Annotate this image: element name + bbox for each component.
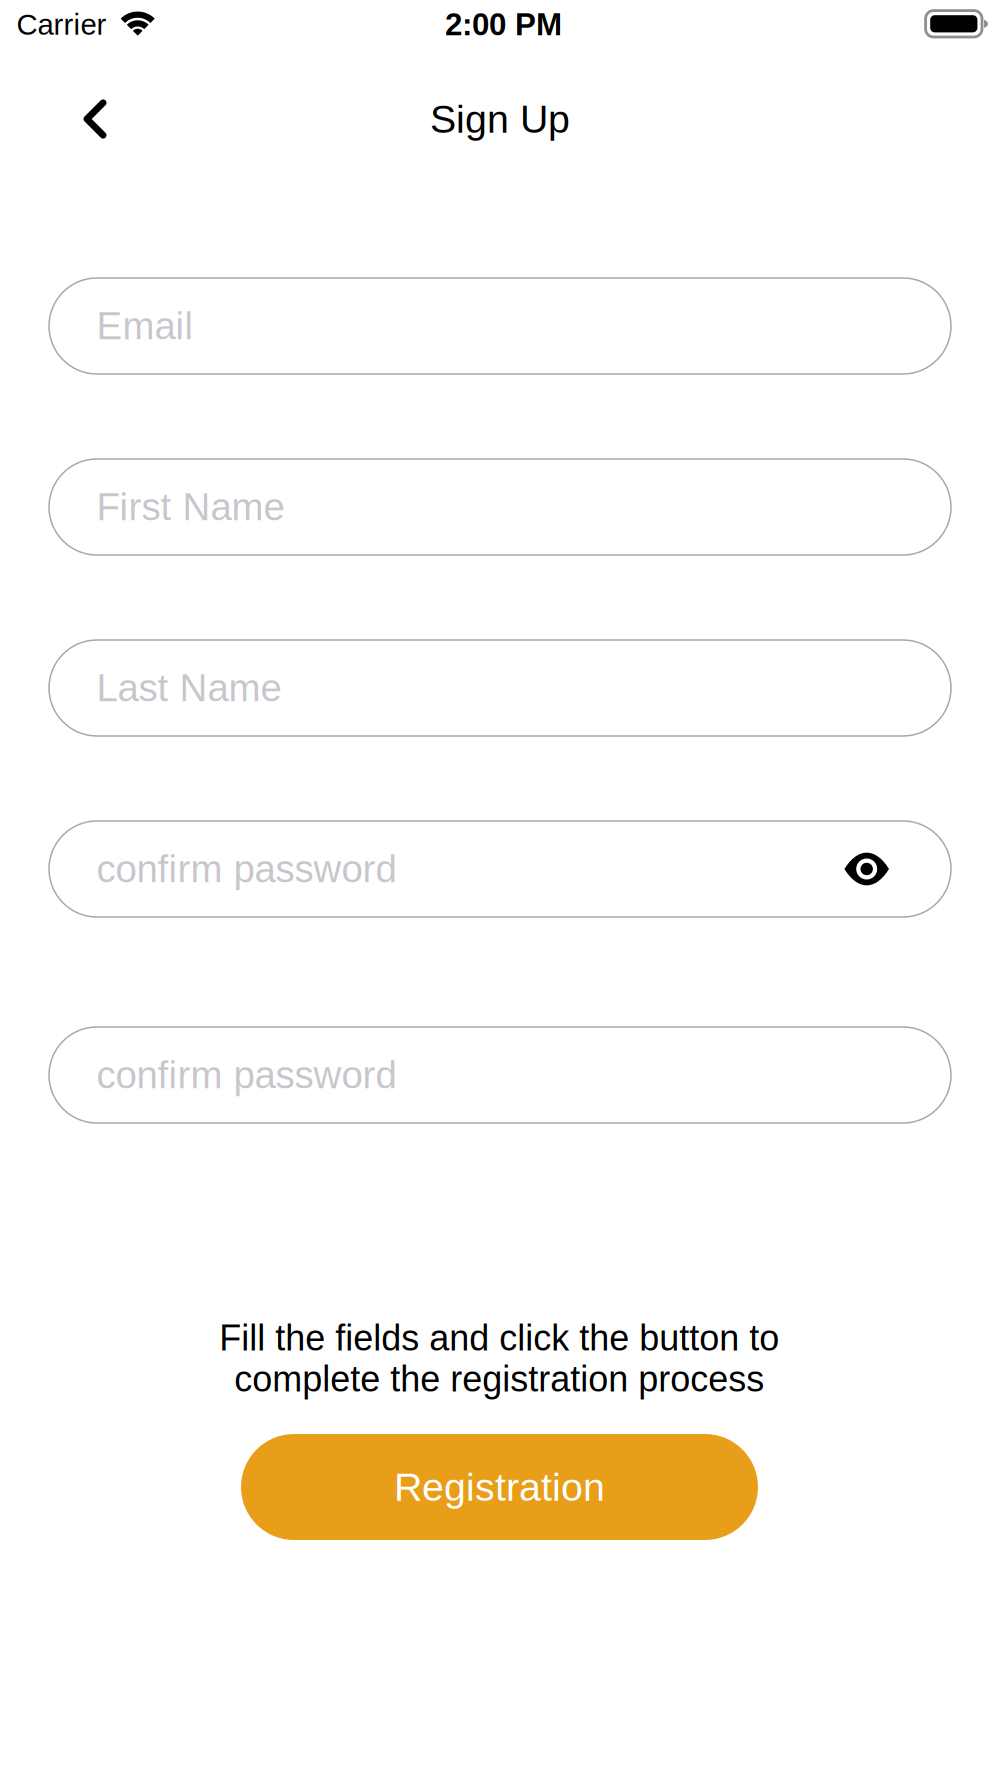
staticText: First Name <box>96 486 284 528</box>
staticText: Last Name <box>96 667 281 709</box>
staticText: Fill the fields and click the button to … <box>219 1318 779 1399</box>
staticText: 2:00 PM <box>445 7 562 42</box>
button[interactable]: Show password <box>836 838 898 900</box>
secureTextField[interactable]: confirm password <box>49 1027 951 1123</box>
secureTextField[interactable]: confirm password <box>49 821 951 917</box>
staticText: Registration <box>394 1465 605 1509</box>
staticText: confirm password <box>96 1054 396 1096</box>
staticText: Email <box>96 305 193 347</box>
button[interactable]: Registration <box>241 1434 758 1540</box>
staticText: confirm password <box>96 848 396 890</box>
textField[interactable]: Last Name <box>49 640 951 736</box>
textField[interactable]: First Name <box>49 459 951 555</box>
textField[interactable]: Email <box>49 278 951 374</box>
staticText: Sign Up <box>430 97 570 141</box>
staticText: Carrier <box>16 8 106 41</box>
button[interactable]: Back <box>60 84 130 154</box>
